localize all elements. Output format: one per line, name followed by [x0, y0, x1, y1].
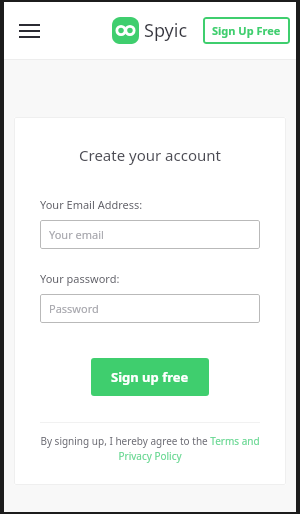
staticText: Your email [49, 227, 104, 242]
staticText: Password [49, 301, 99, 316]
button[interactable]: Your email [40, 220, 260, 249]
staticText: Create your account [79, 145, 221, 165]
staticText: Your Email Address: [40, 197, 260, 212]
button[interactable]: Sign up free [91, 358, 209, 396]
staticText: Sign Up Free [212, 23, 281, 38]
button[interactable]: Spyic [112, 17, 188, 44]
button[interactable]: Password [40, 294, 260, 323]
staticText: Your password: [40, 271, 260, 286]
staticText: Sign up free [111, 368, 189, 386]
button[interactable]: Sign Up Free [203, 17, 290, 44]
staticText: Spyic [144, 18, 188, 43]
button[interactable]: By signing up, I hereby agree to the Ter… [40, 434, 260, 463]
button[interactable]: Menu [12, 14, 46, 48]
